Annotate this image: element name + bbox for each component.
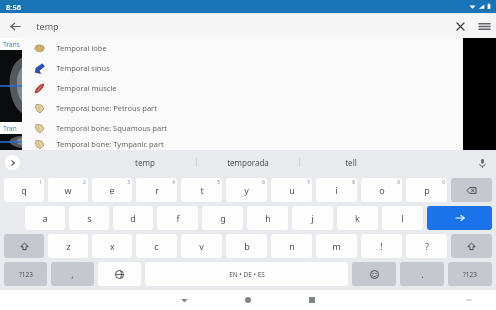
button[interactable]: ?123 <box>448 262 492 286</box>
staticText: c <box>154 240 159 252</box>
staticText: temp <box>135 157 155 168</box>
staticText: j <box>311 212 314 224</box>
staticText: ?123 <box>463 270 477 279</box>
button[interactable]: o <box>361 178 402 202</box>
staticText: 7 <box>307 179 310 185</box>
button[interactable]: c <box>136 234 177 258</box>
button[interactable]: Voice input <box>474 155 490 171</box>
staticText: Temporal bone: Squamous part <box>56 123 167 133</box>
button[interactable]: temporada <box>197 150 299 175</box>
button[interactable]: Temporal lobe <box>22 38 463 58</box>
button[interactable]: ?123 <box>4 262 47 286</box>
button[interactable]: Backspace <box>451 178 492 202</box>
button[interactable]: a <box>25 206 65 230</box>
button[interactable]: Back <box>4 15 26 37</box>
button[interactable]: Temporal muscle <box>22 78 463 98</box>
staticText: , <box>71 268 74 280</box>
staticText: 2 <box>83 179 86 185</box>
button[interactable]: b <box>226 234 267 258</box>
button[interactable]: Shift <box>4 234 44 258</box>
button[interactable]: temp <box>94 150 196 175</box>
staticText: h <box>265 212 271 224</box>
button[interactable]: g <box>202 206 243 230</box>
staticText: EN • DE • ES <box>229 270 265 279</box>
button[interactable]: Menu <box>472 14 496 38</box>
button[interactable]: Shift <box>451 234 492 258</box>
button[interactable]: Hide keyboard <box>175 291 193 309</box>
button[interactable]: m <box>316 234 357 258</box>
button[interactable]: Clear <box>448 14 472 38</box>
button[interactable]: z <box>48 234 88 258</box>
button[interactable]: Temporal bone: Petrous part <box>22 98 463 118</box>
staticText: r <box>155 184 159 196</box>
staticText: v <box>199 240 204 252</box>
button[interactable]: Change language <box>98 262 141 286</box>
button[interactable]: Recents <box>303 291 321 309</box>
button[interactable]: ! <box>361 234 402 258</box>
button[interactable]: r <box>136 178 177 202</box>
button[interactable]: w <box>48 178 88 202</box>
staticText: s <box>87 212 92 224</box>
button[interactable]: v <box>181 234 222 258</box>
button[interactable]: Temporal sinus <box>22 58 463 78</box>
button[interactable]: More suggestions <box>5 155 20 170</box>
staticText: u <box>289 184 295 196</box>
button[interactable]: q <box>4 178 44 202</box>
button[interactable]: e <box>92 178 132 202</box>
button[interactable]: h <box>247 206 288 230</box>
staticText: ! <box>380 240 383 252</box>
staticText: 0 <box>442 179 445 185</box>
staticText: o <box>379 184 385 196</box>
button[interactable]: x <box>92 234 132 258</box>
staticText: 6 <box>262 179 265 185</box>
staticText: z <box>66 240 71 252</box>
staticText: w <box>64 184 72 196</box>
staticText: Temporal sinus <box>56 63 110 73</box>
staticText: b <box>244 240 250 252</box>
other: Keyboard indicator <box>462 293 476 307</box>
staticText: 1 <box>39 179 42 185</box>
staticText: 5 <box>217 179 220 185</box>
staticText: n <box>289 240 295 252</box>
button[interactable]: Temporal bone: Tympanic part <box>22 138 463 150</box>
staticText: Tran <box>3 124 17 133</box>
staticText: ?123 <box>19 270 33 279</box>
staticText: i <box>335 184 338 196</box>
button[interactable]: i <box>316 178 357 202</box>
button[interactable]: . <box>400 262 444 286</box>
button[interactable]: Emoji <box>352 262 396 286</box>
staticText: p <box>424 184 430 196</box>
button[interactable]: tell <box>300 150 402 175</box>
button[interactable]: Enter <box>427 206 492 230</box>
staticText: tell <box>345 157 357 168</box>
staticText: k <box>355 212 360 224</box>
staticText: d <box>130 212 136 224</box>
button[interactable]: Temporal bone: Squamous part <box>22 118 463 138</box>
staticText: temp <box>36 20 59 32</box>
staticText: e <box>109 184 115 196</box>
staticText: 8:56 <box>6 2 21 12</box>
button[interactable]: y <box>226 178 267 202</box>
staticText: 8 <box>352 179 355 185</box>
button[interactable]: p <box>406 178 447 202</box>
button[interactable]: d <box>113 206 153 230</box>
button[interactable]: f <box>157 206 198 230</box>
button[interactable]: k <box>337 206 378 230</box>
staticText: Temporal bone: Petrous part <box>56 103 157 113</box>
button[interactable]: Home <box>239 291 257 309</box>
staticText: t <box>200 184 204 196</box>
button[interactable]: u <box>271 178 312 202</box>
button[interactable]: j <box>292 206 333 230</box>
button[interactable]: t <box>181 178 222 202</box>
staticText: Temporal lobe <box>56 43 107 53</box>
button[interactable]: EN • DE • ES <box>145 262 348 286</box>
staticText: temporada <box>227 157 269 168</box>
button[interactable]: l <box>382 206 423 230</box>
button[interactable]: s <box>69 206 109 230</box>
staticText: y <box>244 184 249 196</box>
staticText: l <box>401 212 404 224</box>
button[interactable]: n <box>271 234 312 258</box>
button[interactable]: , <box>51 262 94 286</box>
button[interactable]: ? <box>406 234 447 258</box>
staticText: q <box>21 184 27 196</box>
